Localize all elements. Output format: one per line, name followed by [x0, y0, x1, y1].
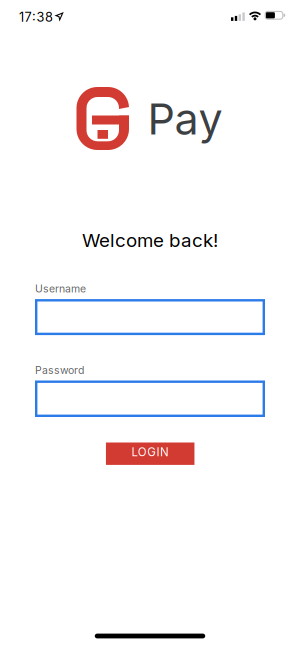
- staticText: Welcome back!: [82, 229, 218, 252]
- staticText: Pay: [147, 93, 222, 145]
- staticText: Password: [35, 364, 84, 376]
- staticText: Username: [35, 282, 86, 295]
- button[interactable]: Password: [35, 380, 265, 417]
- button[interactable]: Username: [35, 299, 265, 335]
- staticText: 17:38: [19, 9, 53, 25]
- button[interactable]: LOGIN: [106, 442, 194, 465]
- staticText: LOGIN: [131, 445, 169, 459]
